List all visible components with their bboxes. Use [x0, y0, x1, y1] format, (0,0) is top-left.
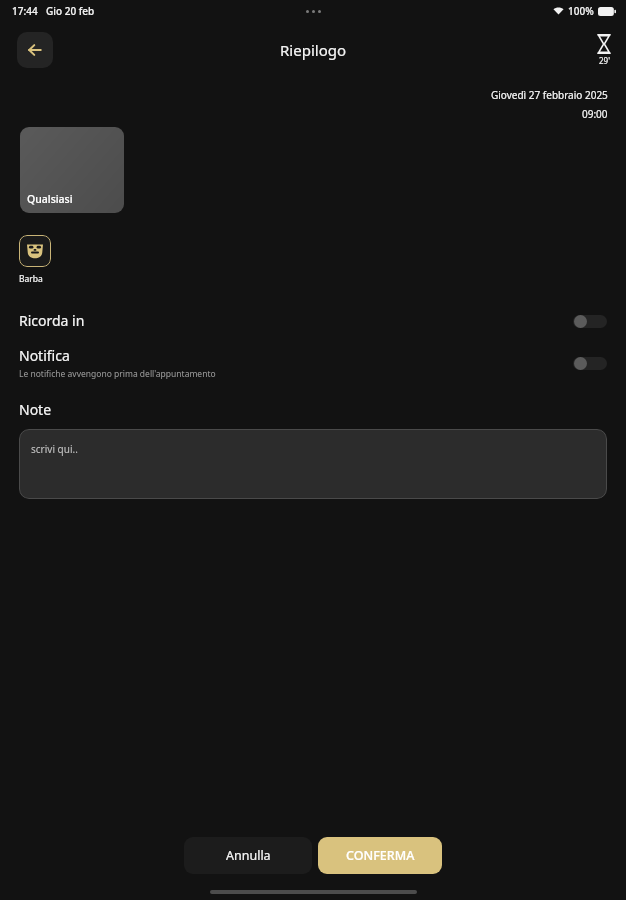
- staticText: CONFERMA: [346, 847, 415, 864]
- button[interactable]: Barba: [19, 235, 63, 285]
- staticText: Le notifiche avvengono prima dell'appunt…: [19, 368, 216, 380]
- staticText: Annulla: [226, 847, 271, 864]
- staticText: Gio 20 feb: [46, 4, 95, 18]
- staticText: Riepilogo: [280, 40, 347, 60]
- staticText: Barba: [19, 273, 43, 285]
- staticText: 29': [599, 55, 610, 66]
- button[interactable]: Annulla: [184, 837, 312, 874]
- staticText: Notifica: [19, 346, 70, 365]
- staticText: 09:00: [582, 107, 608, 121]
- staticText: scrivi qui..: [31, 442, 78, 456]
- button[interactable]: Durata: [596, 34, 612, 66]
- button[interactable]: scrivi qui..: [19, 429, 607, 499]
- staticText: Note: [19, 400, 52, 419]
- staticText: Qualsiasi: [27, 192, 73, 206]
- button[interactable]: Qualsiasi: [20, 127, 124, 213]
- button[interactable]: Notifica: [0, 346, 626, 380]
- button[interactable]: CONFERMA: [318, 837, 442, 874]
- button[interactable]: Indietro: [17, 32, 53, 68]
- staticText: Ricorda in: [19, 311, 85, 330]
- staticText: 100%: [568, 4, 594, 18]
- staticText: Giovedì 27 febbraio 2025: [491, 88, 608, 102]
- staticText: 17:44: [12, 4, 38, 18]
- button[interactable]: Ricorda in: [0, 311, 626, 330]
